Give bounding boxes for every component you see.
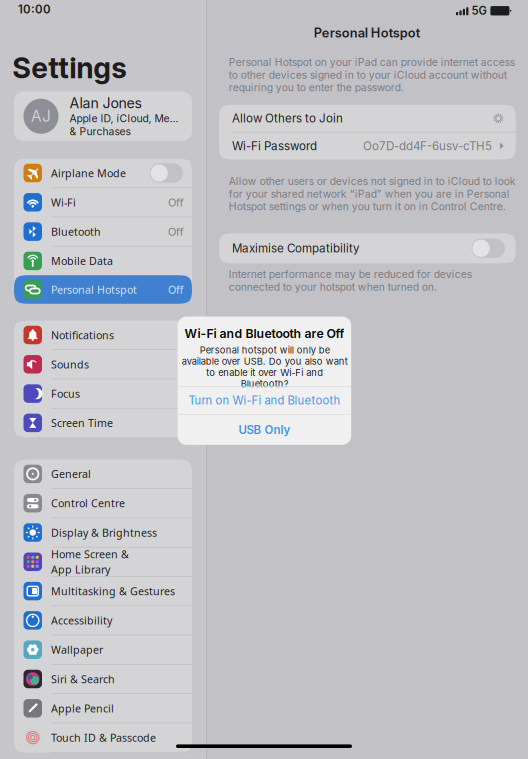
button[interactable]: USB Only bbox=[178, 415, 351, 445]
button[interactable]: Siri & Search bbox=[14, 665, 192, 693]
button[interactable]: Focus bbox=[14, 379, 192, 408]
staticText: 10:00 bbox=[18, 2, 51, 16]
button[interactable]: Wi-Fi Password bbox=[219, 132, 516, 159]
button[interactable]: General bbox=[14, 460, 192, 488]
button[interactable]: Sounds bbox=[14, 350, 192, 379]
staticText: Display & Brightness bbox=[51, 525, 157, 540]
staticText: Personal hotspot will only be available … bbox=[181, 344, 347, 390]
button[interactable]: Notifications bbox=[14, 321, 192, 349]
staticText: Apple ID, iCloud, Media bbox=[69, 112, 183, 125]
staticText: General bbox=[51, 467, 91, 481]
staticText: Oo7D-dd4F-6usv-cTH5 bbox=[363, 139, 492, 153]
button[interactable]: Allow Others to Join bbox=[219, 105, 516, 132]
staticText: & Purchases bbox=[69, 125, 130, 138]
staticText: Sounds bbox=[51, 357, 89, 371]
staticText: Siri & Search bbox=[51, 672, 115, 686]
staticText: Allow other users or devices not signed … bbox=[229, 175, 516, 213]
staticText: Off bbox=[168, 224, 183, 239]
staticText: Off bbox=[168, 195, 183, 209]
staticText: Maximise Compatibility bbox=[232, 241, 360, 255]
button[interactable]: Multitasking & Gestures bbox=[14, 577, 192, 605]
staticText: Screen Time bbox=[51, 416, 113, 430]
staticText: Alan Jones bbox=[69, 95, 141, 112]
staticText: Turn on Wi-Fi and Bluetooth bbox=[188, 394, 340, 407]
button[interactable]: Turn on Wi-Fi and Bluetooth bbox=[178, 387, 351, 414]
staticText: Internet performance may be reduced for … bbox=[229, 268, 472, 293]
staticText: Mobile Data bbox=[51, 254, 113, 268]
staticText: AJ bbox=[31, 107, 51, 126]
staticText: App Library bbox=[51, 562, 110, 576]
staticText: Off bbox=[168, 282, 183, 297]
button[interactable]: Display & Brightness bbox=[14, 518, 192, 547]
staticText: Multitasking & Gestures bbox=[51, 584, 175, 598]
staticText: Personal Hotspot on your iPad can provid… bbox=[229, 56, 515, 94]
button[interactable]: Screen Time bbox=[14, 409, 192, 437]
button[interactable]: Airplane Mode bbox=[14, 159, 192, 187]
staticText: Home Screen & bbox=[51, 547, 129, 561]
button[interactable]: Mobile Data bbox=[14, 247, 192, 275]
staticText: Wallpaper bbox=[51, 643, 103, 657]
staticText: Apple Pencil bbox=[51, 701, 114, 715]
button[interactable]: AJ bbox=[14, 91, 192, 141]
button[interactable]: Wi-Fi bbox=[14, 188, 192, 217]
button[interactable]: Wallpaper bbox=[14, 635, 192, 664]
button[interactable]: Personal Hotspot bbox=[14, 275, 192, 304]
staticText: 5G bbox=[471, 4, 486, 18]
staticText: Focus bbox=[51, 386, 80, 401]
staticText: Wi-Fi and Bluetooth are Off bbox=[184, 326, 344, 341]
button[interactable]: Bluetooth bbox=[14, 217, 192, 246]
staticText: Bluetooth bbox=[51, 224, 101, 239]
staticText: Accessibility bbox=[51, 613, 112, 627]
button[interactable]: Maximise Compatibility bbox=[219, 233, 516, 263]
button[interactable]: Accessibility bbox=[14, 606, 192, 635]
button[interactable]: Touch ID & Passcode bbox=[14, 723, 192, 752]
staticText: Settings bbox=[12, 50, 127, 85]
staticText: Wi-Fi bbox=[51, 195, 76, 209]
staticText: Touch ID & Passcode bbox=[51, 730, 156, 745]
staticText: Wi-Fi Password bbox=[232, 139, 317, 153]
button[interactable]: Control Centre bbox=[14, 489, 192, 517]
staticText: Personal Hotspot bbox=[51, 282, 137, 297]
staticText: Control Centre bbox=[51, 496, 125, 510]
staticText: Airplane Mode bbox=[51, 166, 126, 180]
staticText: USB Only bbox=[238, 423, 290, 437]
staticText: Allow Others to Join bbox=[232, 111, 343, 125]
button[interactable]: Home Screen & bbox=[14, 547, 192, 576]
staticText: Notifications bbox=[51, 328, 114, 342]
button[interactable]: Apple Pencil bbox=[14, 694, 192, 723]
staticText: Personal Hotspot bbox=[314, 25, 421, 40]
